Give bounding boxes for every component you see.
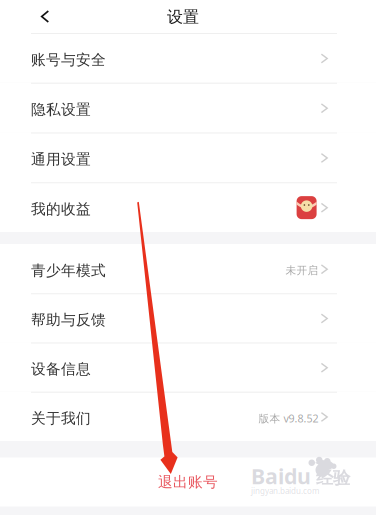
staticText: 通用设置 [31,150,91,168]
button[interactable]: 青少年模式 [0,244,376,293]
button[interactable]: 隐私设置 [0,83,376,133]
button[interactable]: 我的收益 [0,182,376,232]
staticText: 青少年模式 [31,262,106,280]
staticText: Baidu [251,462,311,490]
staticText: 帮助与反馈 [31,311,106,329]
staticText: 我的收益 [31,200,91,218]
staticText: 经验 [316,467,350,489]
staticText: 未开启 [286,264,319,277]
button[interactable]: 退出账号 [0,457,376,506]
staticText: 账号与安全 [31,51,106,69]
button[interactable]: 设备信息 [0,342,376,392]
staticText: 设置 [167,7,199,27]
button[interactable]: 通用设置 [0,132,376,182]
button[interactable]: 关于我们 [0,392,376,441]
staticText: 隐私设置 [31,101,91,119]
staticText: 版本 v9.8.52 [259,411,319,425]
button[interactable]: Back [28,0,62,33]
staticText: 关于我们 [31,409,91,427]
staticText: 设备信息 [31,360,91,378]
button[interactable]: 帮助与反馈 [0,293,376,342]
button[interactable]: 账号与安全 [0,33,376,83]
staticText: 退出账号 [158,473,218,491]
staticText: jingyan.baidu.com [251,486,319,496]
